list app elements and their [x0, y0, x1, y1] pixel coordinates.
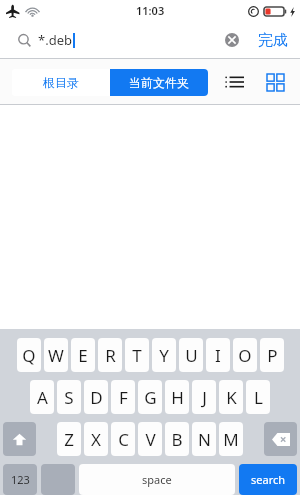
button[interactable]: Q: [17, 338, 41, 372]
button[interactable]: A: [30, 380, 54, 414]
button[interactable]: K: [219, 380, 243, 414]
button[interactable]: List view: [216, 64, 252, 100]
button[interactable]: V: [138, 422, 162, 456]
button[interactable]: Z: [57, 422, 81, 456]
button[interactable]: Y: [152, 338, 176, 372]
button[interactable]: U: [179, 338, 203, 372]
button[interactable]: G: [138, 380, 162, 414]
staticText: G: [144, 386, 157, 409]
staticText: search: [251, 472, 286, 487]
button[interactable]: D: [84, 380, 108, 414]
staticText: T: [132, 344, 142, 367]
staticText: R: [105, 344, 116, 367]
staticText: Z: [64, 428, 74, 451]
staticText: E: [78, 344, 88, 367]
button[interactable]: T: [125, 338, 149, 372]
button[interactable]: Clear text: [218, 26, 246, 54]
button[interactable]: space: [79, 464, 235, 495]
staticText: 123: [11, 472, 30, 487]
staticText: 11:03: [136, 3, 165, 18]
staticText: M: [223, 428, 239, 451]
staticText: space: [142, 472, 172, 487]
button[interactable]: N: [192, 422, 216, 456]
button[interactable]: R: [98, 338, 122, 372]
staticText: Q: [22, 344, 36, 367]
button[interactable]: E: [71, 338, 95, 372]
staticText: N: [198, 428, 211, 451]
button[interactable]: I: [206, 338, 230, 372]
staticText: Y: [159, 344, 169, 367]
staticText: X: [91, 428, 101, 451]
button[interactable]: Shift: [3, 422, 36, 456]
button[interactable]: B: [165, 422, 189, 456]
staticText: V: [145, 428, 156, 451]
staticText: S: [64, 386, 74, 409]
button[interactable]: H: [165, 380, 189, 414]
button[interactable]: C: [111, 422, 135, 456]
button[interactable]: Grid view: [256, 63, 294, 101]
staticText: A: [37, 386, 48, 409]
button[interactable]: X: [84, 422, 108, 456]
staticText: B: [171, 428, 183, 451]
button[interactable]: search: [239, 464, 297, 495]
staticText: 根目录: [43, 75, 79, 90]
button[interactable]: Delete: [264, 422, 297, 456]
button[interactable]: Numbers: [3, 464, 37, 495]
staticText: O: [238, 344, 252, 367]
button[interactable]: 根目录: [12, 69, 110, 96]
staticText: I: [215, 344, 221, 367]
button[interactable]: W: [44, 338, 68, 372]
staticText: 当前文件夹: [129, 75, 189, 90]
staticText: P: [267, 344, 278, 367]
button[interactable]: J: [192, 380, 216, 414]
button[interactable]: M: [219, 422, 243, 456]
button[interactable]: 当前文件夹: [110, 69, 208, 96]
staticText: *.deb: [38, 31, 72, 49]
staticText: D: [90, 386, 103, 409]
staticText: 完成: [258, 31, 288, 50]
button[interactable]: P: [260, 338, 284, 372]
staticText: C: [118, 428, 129, 451]
button[interactable]: O: [233, 338, 257, 372]
staticText: J: [202, 386, 207, 409]
staticText: U: [185, 344, 198, 367]
button[interactable]: S: [57, 380, 81, 414]
staticText: K: [226, 386, 237, 409]
staticText: F: [119, 386, 128, 409]
staticText: W: [48, 344, 64, 367]
staticText: L: [254, 386, 263, 409]
staticText: H: [171, 386, 184, 409]
button[interactable]: F: [111, 380, 135, 414]
button[interactable]: L: [246, 380, 270, 414]
button[interactable]: Emoji: [41, 464, 75, 495]
button[interactable]: 完成: [250, 27, 296, 54]
